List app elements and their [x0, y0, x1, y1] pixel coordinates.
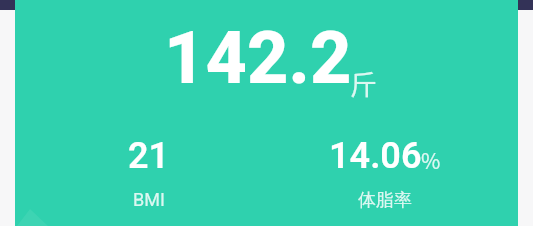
button[interactable]: 21 [31, 135, 267, 210]
button[interactable]: 14.06 [267, 135, 503, 212]
staticText: 21 [128, 135, 170, 177]
staticText: 142.2 [164, 16, 352, 100]
staticText: 体脂率 [358, 189, 412, 212]
staticText: BMI [133, 189, 165, 210]
staticText: % [421, 145, 441, 175]
staticText: 斤 [350, 64, 377, 103]
button[interactable]: Weight summary [15, 0, 518, 226]
staticText: 14.06 [329, 135, 422, 177]
